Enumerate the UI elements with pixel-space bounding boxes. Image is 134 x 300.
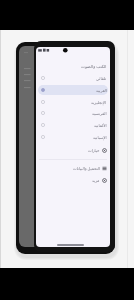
button[interactable]: التحميل والبيانات (39, 163, 107, 173)
button[interactable]: خيارات (39, 145, 107, 155)
staticText: خيارات (88, 148, 100, 153)
staticText: الإنجليزية (91, 100, 107, 105)
staticText: العربية (96, 88, 107, 93)
staticText: الكتب والصوت (81, 64, 107, 70)
staticText: التحميل والبيانات (73, 166, 100, 171)
button[interactable]: العربية (38, 85, 108, 95)
staticText: الإسبانية (93, 135, 107, 140)
button[interactable]: الإسبانية (38, 132, 108, 142)
staticText: الألمانية (94, 123, 107, 128)
button[interactable]: تلقائي (38, 73, 108, 83)
staticText: الفرنسية (92, 111, 107, 116)
button[interactable]: الإنجليزية (38, 97, 108, 107)
button[interactable]: الفرنسية (38, 108, 108, 118)
button[interactable]: الألمانية (38, 120, 108, 130)
button[interactable]: مزيد (39, 175, 107, 185)
staticText: تلقائي (96, 76, 107, 81)
staticText: مزيد (92, 178, 100, 183)
